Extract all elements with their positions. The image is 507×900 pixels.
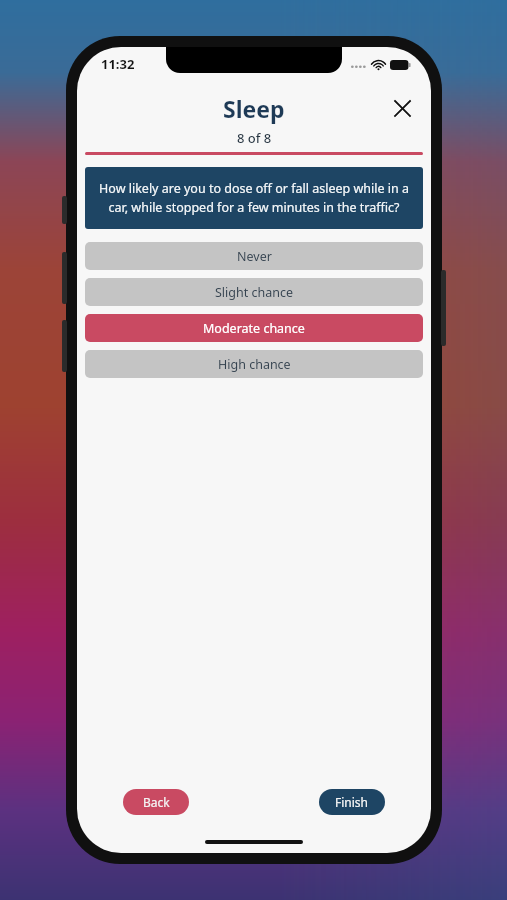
button[interactable]: Never xyxy=(85,242,423,270)
staticText: How likely are you to dose off or fall a… xyxy=(99,180,409,216)
button[interactable]: Finish xyxy=(319,789,385,815)
button[interactable]: Slight chance xyxy=(85,278,423,306)
button[interactable]: Moderate chance xyxy=(85,314,423,342)
staticText: Sleep xyxy=(223,93,285,124)
staticText: Moderate chance xyxy=(203,320,305,337)
staticText: 8 of 8 xyxy=(77,129,431,147)
button[interactable]: Back xyxy=(123,789,189,815)
staticText: Slight chance xyxy=(215,284,294,301)
button[interactable]: Close xyxy=(387,93,417,123)
staticText: Never xyxy=(237,248,272,265)
staticText: Back xyxy=(143,794,170,810)
button[interactable]: High chance xyxy=(85,350,423,378)
staticText: High chance xyxy=(218,356,291,373)
staticText: 11:32 xyxy=(101,55,135,73)
staticText: Finish xyxy=(335,794,369,810)
